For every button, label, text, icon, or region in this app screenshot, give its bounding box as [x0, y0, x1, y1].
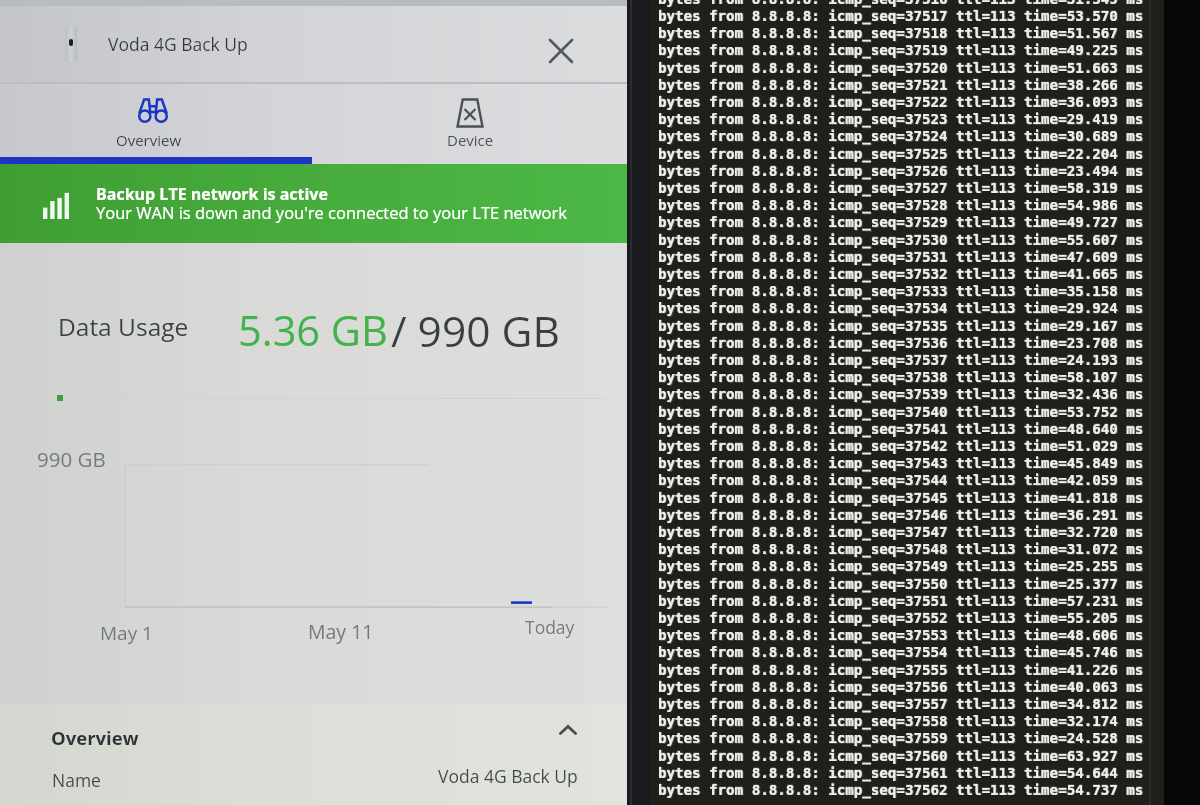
staticText: bytes from 8.8.8.8: icmp_seq=37519 ttl=1…	[658, 42, 1144, 58]
staticText: bytes from 8.8.8.8: icmp_seq=37545 ttl=1…	[658, 489, 1144, 505]
staticText: bytes from 8.8.8.8: icmp_seq=37535 ttl=1…	[658, 317, 1144, 333]
staticText: bytes from 8.8.8.8: icmp_seq=37542 ttl=1…	[658, 437, 1144, 453]
staticText: bytes from 8.8.8.8: icmp_seq=37554 ttl=1…	[658, 644, 1144, 660]
staticText: bytes from 8.8.8.8: icmp_seq=37535 ttl=1…	[659, 318, 1145, 334]
staticText: bytes from 8.8.8.8: icmp_seq=37517 ttl=1…	[658, 7, 1144, 23]
staticText: bytes from 8.8.8.8: icmp_seq=37557 ttl=1…	[658, 695, 1144, 711]
staticText: bytes from 8.8.8.8: icmp_seq=37533 ttl=1…	[658, 283, 1144, 299]
staticText: bytes from 8.8.8.8: icmp_seq=37520 ttl=1…	[658, 59, 1144, 75]
staticText: bytes from 8.8.8.8: icmp_seq=37547 ttl=1…	[658, 524, 1144, 540]
staticText: bytes from 8.8.8.8: icmp_seq=37539 ttl=1…	[658, 386, 1144, 402]
staticText: bytes from 8.8.8.8: icmp_seq=37522 ttl=1…	[658, 93, 1144, 109]
staticText: bytes from 8.8.8.8: icmp_seq=37518 ttl=1…	[658, 25, 1144, 41]
button[interactable]: Device	[313, 84, 627, 164]
staticText: bytes from 8.8.8.8: icmp_seq=37560 ttl=1…	[658, 748, 1144, 764]
staticText: Your WAN is down and you're connected to…	[96, 201, 567, 223]
staticText: bytes from 8.8.8.8: icmp_seq=37536 ttl=1…	[659, 335, 1145, 351]
staticText: bytes from 8.8.8.8: icmp_seq=37523 ttl=1…	[658, 111, 1144, 127]
staticText: Overview	[116, 130, 182, 150]
staticText: bytes from 8.8.8.8: icmp_seq=37526 ttl=1…	[659, 163, 1145, 179]
staticText: bytes from 8.8.8.8: icmp_seq=37560 ttl=1…	[658, 747, 1144, 763]
staticText: bytes from 8.8.8.8: icmp_seq=37530 ttl=1…	[658, 231, 1144, 247]
staticText: bytes from 8.8.8.8: icmp_seq=37529 ttl=1…	[659, 215, 1145, 231]
staticText: bytes from 8.8.8.8: icmp_seq=37545 ttl=1…	[658, 490, 1144, 506]
staticText: bytes from 8.8.8.8: icmp_seq=37551 ttl=1…	[658, 592, 1144, 608]
staticText: bytes from 8.8.8.8: icmp_seq=37526 ttl=1…	[658, 162, 1144, 178]
staticText: bytes from 8.8.8.8: icmp_seq=37558 ttl=1…	[658, 713, 1144, 729]
staticText: bytes from 8.8.8.8: icmp_seq=37537 ttl=1…	[659, 352, 1145, 368]
staticText: bytes from 8.8.8.8: icmp_seq=37532 ttl=1…	[658, 266, 1144, 282]
staticText: bytes from 8.8.8.8: icmp_seq=37556 ttl=1…	[659, 679, 1145, 695]
staticText: bytes from 8.8.8.8: icmp_seq=37521 ttl=1…	[658, 76, 1144, 92]
staticText: bytes from 8.8.8.8: icmp_seq=37517 ttl=1…	[658, 8, 1144, 24]
staticText: bytes from 8.8.8.8: icmp_seq=37561 ttl=1…	[658, 765, 1144, 781]
staticText: bytes from 8.8.8.8: icmp_seq=37543 ttl=1…	[658, 455, 1144, 471]
staticText: bytes from 8.8.8.8: icmp_seq=37532 ttl=1…	[658, 265, 1144, 281]
button[interactable]: Overview	[0, 704, 627, 762]
staticText: bytes from 8.8.8.8: icmp_seq=37533 ttl=1…	[659, 284, 1145, 300]
button[interactable]: Name	[0, 762, 627, 805]
staticText: 990 GB	[37, 445, 106, 473]
staticText: bytes from 8.8.8.8: icmp_seq=37546 ttl=1…	[658, 506, 1144, 522]
staticText: Overview	[51, 725, 139, 750]
staticText: bytes from 8.8.8.8: icmp_seq=37541 ttl=1…	[658, 421, 1144, 437]
staticText: bytes from 8.8.8.8: icmp_seq=37525 ttl=1…	[658, 145, 1144, 161]
staticText: bytes from 8.8.8.8: icmp_seq=37549 ttl=1…	[659, 559, 1145, 575]
staticText: bytes from 8.8.8.8: icmp_seq=37534 ttl=1…	[658, 300, 1144, 316]
staticText: bytes from 8.8.8.8: icmp_seq=37550 ttl=1…	[658, 576, 1144, 592]
staticText: bytes from 8.8.8.8: icmp_seq=37516 ttl=1…	[659, 0, 1145, 7]
staticText: bytes from 8.8.8.8: icmp_seq=37530 ttl=1…	[658, 232, 1144, 248]
staticText: bytes from 8.8.8.8: icmp_seq=37562 ttl=1…	[658, 781, 1144, 797]
staticText: bytes from 8.8.8.8: icmp_seq=37536 ttl=1…	[658, 334, 1144, 350]
staticText: bytes from 8.8.8.8: icmp_seq=37554 ttl=1…	[658, 644, 1144, 660]
staticText: bytes from 8.8.8.8: icmp_seq=37518 ttl=1…	[658, 25, 1144, 41]
staticText: bytes from 8.8.8.8: icmp_seq=37540 ttl=1…	[659, 404, 1145, 420]
staticText: bytes from 8.8.8.8: icmp_seq=37517 ttl=1…	[659, 8, 1145, 24]
staticText: bytes from 8.8.8.8: icmp_seq=37525 ttl=1…	[658, 146, 1144, 162]
staticText: bytes from 8.8.8.8: icmp_seq=37543 ttl=1…	[659, 456, 1145, 472]
staticText: bytes from 8.8.8.8: icmp_seq=37533 ttl=1…	[658, 283, 1144, 299]
staticText: bytes from 8.8.8.8: icmp_seq=37544 ttl=1…	[658, 472, 1144, 488]
staticText: bytes from 8.8.8.8: icmp_seq=37556 ttl=1…	[658, 679, 1144, 695]
staticText: bytes from 8.8.8.8: icmp_seq=37562 ttl=1…	[659, 782, 1145, 798]
staticText: Backup LTE network is active	[96, 183, 328, 205]
staticText: bytes from 8.8.8.8: icmp_seq=37538 ttl=1…	[659, 370, 1145, 386]
staticText: bytes from 8.8.8.8: icmp_seq=37519 ttl=1…	[658, 42, 1144, 58]
staticText: bytes from 8.8.8.8: icmp_seq=37531 ttl=1…	[659, 249, 1145, 265]
staticText: bytes from 8.8.8.8: icmp_seq=37544 ttl=1…	[658, 472, 1144, 488]
staticText: bytes from 8.8.8.8: icmp_seq=37524 ttl=1…	[659, 129, 1145, 145]
staticText: bytes from 8.8.8.8: icmp_seq=37557 ttl=1…	[658, 696, 1144, 712]
staticText: bytes from 8.8.8.8: icmp_seq=37548 ttl=1…	[658, 541, 1144, 557]
staticText: bytes from 8.8.8.8: icmp_seq=37539 ttl=1…	[659, 387, 1145, 403]
staticText: bytes from 8.8.8.8: icmp_seq=37542 ttl=1…	[659, 438, 1145, 454]
staticText: bytes from 8.8.8.8: icmp_seq=37534 ttl=1…	[659, 301, 1145, 317]
button[interactable]: Collapse Overview	[549, 711, 587, 749]
staticText: bytes from 8.8.8.8: icmp_seq=37549 ttl=1…	[658, 558, 1144, 574]
staticText: bytes from 8.8.8.8: icmp_seq=37557 ttl=1…	[659, 696, 1145, 712]
button[interactable]: Overview	[0, 84, 313, 164]
staticText: bytes from 8.8.8.8: icmp_seq=37524 ttl=1…	[658, 128, 1144, 144]
staticText: bytes from 8.8.8.8: icmp_seq=37559 ttl=1…	[658, 730, 1144, 746]
staticText: bytes from 8.8.8.8: icmp_seq=37561 ttl=1…	[658, 764, 1144, 780]
staticText: bytes from 8.8.8.8: icmp_seq=37539 ttl=1…	[658, 386, 1144, 402]
staticText: bytes from 8.8.8.8: icmp_seq=37561 ttl=1…	[659, 765, 1145, 781]
staticText: May 1	[100, 620, 153, 646]
staticText: bytes from 8.8.8.8: icmp_seq=37529 ttl=1…	[658, 214, 1144, 230]
staticText: bytes from 8.8.8.8: icmp_seq=37540 ttl=1…	[658, 403, 1144, 419]
staticText: bytes from 8.8.8.8: icmp_seq=37534 ttl=1…	[658, 300, 1144, 316]
staticText: / 990 GB	[391, 302, 560, 360]
staticText: bytes from 8.8.8.8: icmp_seq=37541 ttl=1…	[658, 420, 1144, 436]
staticText: bytes from 8.8.8.8: icmp_seq=37527 ttl=1…	[659, 180, 1145, 196]
staticText: bytes from 8.8.8.8: icmp_seq=37559 ttl=1…	[659, 731, 1145, 747]
staticText: bytes from 8.8.8.8: icmp_seq=37541 ttl=1…	[659, 421, 1145, 437]
staticText: bytes from 8.8.8.8: icmp_seq=37546 ttl=1…	[658, 507, 1144, 523]
staticText: bytes from 8.8.8.8: icmp_seq=37535 ttl=1…	[658, 318, 1144, 334]
staticText: bytes from 8.8.8.8: icmp_seq=37538 ttl=1…	[658, 369, 1144, 385]
staticText: bytes from 8.8.8.8: icmp_seq=37560 ttl=1…	[659, 748, 1145, 764]
staticText: bytes from 8.8.8.8: icmp_seq=37553 ttl=1…	[658, 627, 1144, 643]
button[interactable]: Close	[535, 25, 587, 77]
staticText: bytes from 8.8.8.8: icmp_seq=37553 ttl=1…	[659, 628, 1145, 644]
staticText: bytes from 8.8.8.8: icmp_seq=37532 ttl=1…	[659, 266, 1145, 282]
staticText: bytes from 8.8.8.8: icmp_seq=37545 ttl=1…	[659, 490, 1145, 506]
staticText: bytes from 8.8.8.8: icmp_seq=37547 ttl=1…	[658, 523, 1144, 539]
